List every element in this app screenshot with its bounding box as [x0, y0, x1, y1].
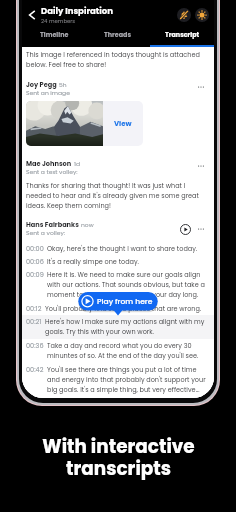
staticText: It's a really simpe one today. — [47, 257, 139, 266]
staticText: 00:06 — [26, 257, 44, 266]
button[interactable]: Back — [24, 7, 40, 23]
staticText: 00:21 — [26, 317, 42, 326]
staticText: Okay, here's the thought I want to share… — [47, 244, 198, 253]
button[interactable]: 00:06 — [22, 255, 214, 268]
button[interactable]: 00:42 — [22, 363, 214, 397]
staticText: Transcript — [165, 30, 200, 39]
staticText: 5h — [59, 81, 67, 89]
staticText: Here it is. We need to make sure our goa… — [47, 270, 207, 300]
staticText: Sent a text volley: — [26, 168, 78, 176]
staticText: With interactive transcripts — [42, 434, 195, 481]
button[interactable]: 00:21 — [22, 315, 214, 339]
staticText: 00:00 — [26, 244, 44, 253]
button[interactable]: Highlights — [195, 8, 209, 22]
button[interactable]: Timeline — [22, 30, 86, 47]
staticText: Play from here — [97, 296, 153, 307]
button[interactable]: 00:36 — [22, 339, 214, 363]
button[interactable]: More options — [194, 80, 207, 93]
button[interactable]: Play — [178, 222, 192, 236]
staticText: 1d — [74, 160, 80, 168]
staticText: 00:36 — [26, 341, 44, 350]
staticText: Sent a volley: — [26, 229, 66, 237]
staticText: Thanks for sharing that thought! It was … — [26, 181, 207, 211]
button[interactable]: Transcript — [150, 30, 214, 47]
staticText: now — [81, 221, 94, 229]
staticText: You'll see there are things you put a lo… — [47, 365, 207, 395]
staticText: You'll probably find some places that ar… — [45, 304, 202, 313]
staticText: This image I referenced in todays though… — [26, 50, 207, 70]
staticText: 00:42 — [26, 365, 44, 374]
button[interactable]: 00:12 — [22, 302, 214, 315]
staticText: 00:09 — [26, 270, 44, 279]
button[interactable]: Mute notifications — [177, 8, 191, 22]
staticText: Here's how I make sure my actions alignt… — [45, 317, 207, 337]
staticText: Hans Fairbanks — [26, 220, 79, 229]
staticText: Threads — [104, 30, 132, 39]
staticText: 24 members — [41, 17, 76, 25]
button[interactable]: View — [26, 101, 143, 146]
button[interactable]: Threads — [86, 30, 150, 47]
staticText: Joy Pegg — [26, 80, 57, 89]
staticText: Sent an image — [26, 89, 70, 97]
button[interactable]: 00:00 — [22, 242, 214, 255]
staticText: Daily Inspiration — [41, 5, 113, 17]
staticText: 00:12 — [26, 304, 42, 313]
staticText: Timeline — [40, 30, 69, 39]
button[interactable]: More options — [194, 159, 207, 172]
button[interactable]: More options — [194, 222, 207, 235]
staticText: Take a day and record what you do every … — [47, 341, 207, 361]
staticText: View — [114, 119, 132, 129]
staticText: Mae Johnson — [26, 159, 72, 168]
button[interactable]: 00:09 — [22, 268, 214, 302]
